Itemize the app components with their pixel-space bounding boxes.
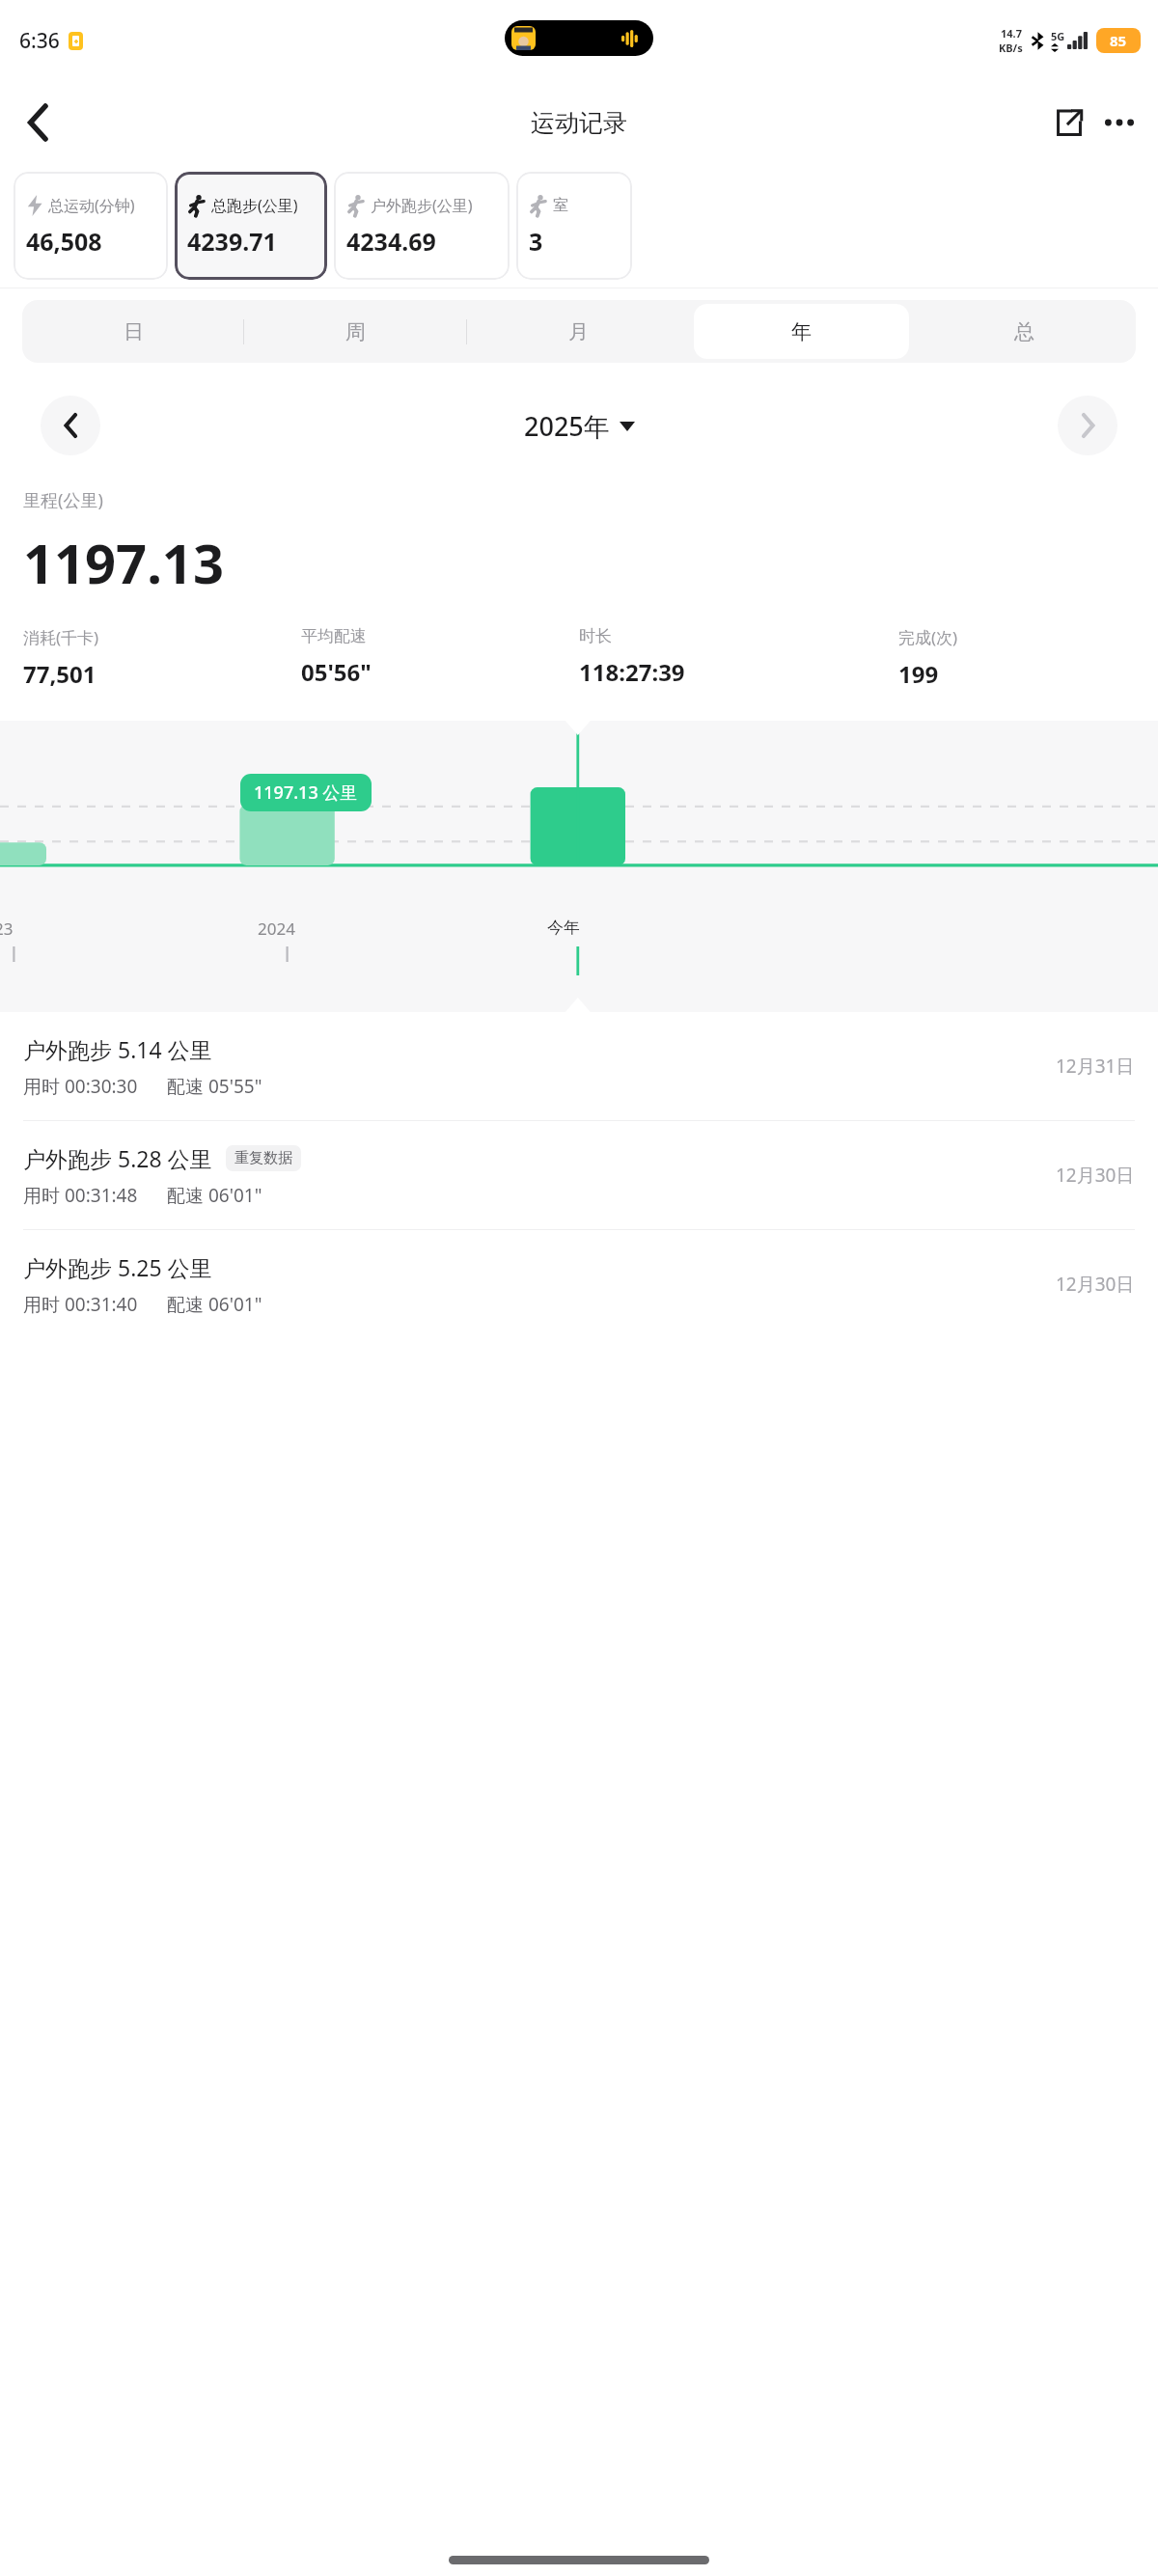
staticText: 配速 06'01" xyxy=(167,1183,262,1208)
staticText: 配速 06'01" xyxy=(167,1292,262,1317)
button[interactable]: 总运动(分钟) xyxy=(14,172,168,280)
staticText: 户外跑步 5.25 公里 xyxy=(23,1252,212,1282)
staticText: KB/s xyxy=(999,41,1023,55)
button[interactable]: 2025年 xyxy=(524,408,635,444)
staticText: 14.7 xyxy=(1001,26,1022,41)
staticText: 运动记录 xyxy=(531,108,627,138)
staticText: 118:27:39 xyxy=(579,656,685,688)
button[interactable]: 日 xyxy=(26,304,240,359)
button[interactable]: 户外跑步 5.25 公里 xyxy=(0,1230,1158,1338)
staticText: 时长 xyxy=(579,626,612,646)
staticText: 4234.69 xyxy=(346,225,436,258)
staticText: 月 xyxy=(568,319,589,344)
staticText: 总跑步(公里) xyxy=(211,195,298,216)
staticText: 6:36 xyxy=(19,27,60,55)
staticText: 77,501 xyxy=(23,658,96,690)
staticText: 05'56" xyxy=(301,656,372,688)
staticText: 4239.71 xyxy=(187,225,277,258)
staticText: 12月30日 xyxy=(1056,1272,1135,1297)
staticText: 完成(次) xyxy=(898,626,958,648)
staticText: 46,508 xyxy=(26,225,102,258)
staticText: 2025年 xyxy=(524,408,610,444)
button[interactable]: 户外跑步 5.28 公里 xyxy=(0,1121,1158,1229)
staticText: 户外跑步 5.28 公里 xyxy=(23,1143,212,1173)
button[interactable]: Previous year xyxy=(41,396,100,455)
staticText: 总运动(分钟) xyxy=(48,195,135,216)
staticText: 总 xyxy=(1014,319,1034,344)
staticText: 用时 00:31:40 xyxy=(23,1292,138,1317)
button[interactable]: More options xyxy=(1094,97,1144,148)
staticText: 今年 xyxy=(547,918,580,938)
button[interactable]: 年 xyxy=(694,304,909,359)
staticText: 12月30日 xyxy=(1056,1163,1135,1188)
staticText: 1197.13 xyxy=(23,526,224,599)
staticText: 里程(公里) xyxy=(23,488,103,512)
staticText: 平均配速 xyxy=(301,626,367,646)
staticText: 用时 00:31:48 xyxy=(23,1183,138,1208)
staticText: 12月31日 xyxy=(1056,1054,1135,1079)
staticText: 重复数据 xyxy=(234,1149,292,1167)
staticText: 用时 00:30:30 xyxy=(23,1074,138,1099)
button[interactable]: Next year xyxy=(1058,396,1117,455)
button[interactable]: 月 xyxy=(471,304,686,359)
staticText: 23 xyxy=(0,918,14,940)
staticText: 消耗(千卡) xyxy=(23,626,99,648)
staticText: 1197.13 公里 xyxy=(254,781,358,805)
staticText: 199 xyxy=(898,658,939,690)
button[interactable]: 总 xyxy=(917,304,1132,359)
staticText: 年 xyxy=(791,319,812,344)
button[interactable]: 总跑步(公里) xyxy=(175,172,327,280)
staticText: 周 xyxy=(345,319,366,344)
staticText: 户外跑步 5.14 公里 xyxy=(23,1034,212,1064)
staticText: 户外跑步(公里) xyxy=(371,195,473,216)
staticText: 日 xyxy=(124,319,144,344)
staticText: 85 xyxy=(1110,31,1127,50)
button[interactable]: Share xyxy=(1044,97,1094,148)
button[interactable]: 室 xyxy=(516,172,632,280)
staticText: 3 xyxy=(529,225,543,258)
button[interactable]: 周 xyxy=(248,304,463,359)
staticText: 2024 xyxy=(258,918,295,940)
button[interactable]: Back xyxy=(12,96,66,150)
staticText: 5G xyxy=(1051,29,1065,43)
staticText: 配速 05'55" xyxy=(167,1074,262,1099)
button[interactable]: 户外跑步 5.14 公里 xyxy=(0,1012,1158,1120)
button[interactable]: 户外跑步(公里) xyxy=(334,172,510,280)
staticText: 室 xyxy=(553,196,568,215)
